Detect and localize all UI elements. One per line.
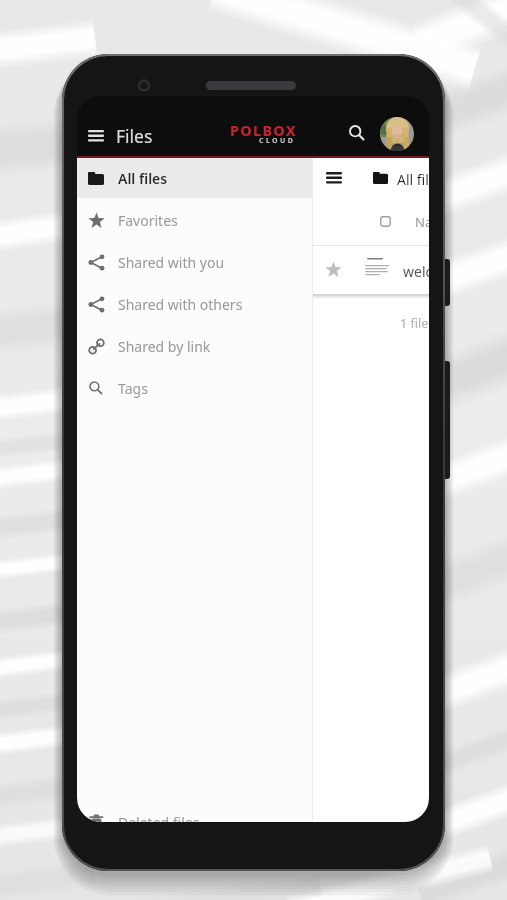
- staticText: Tags: [118, 379, 148, 398]
- staticText: Shared with you: [118, 253, 225, 272]
- staticText: welcome: [403, 262, 429, 281]
- staticText: Shared by link: [118, 337, 211, 356]
- staticText: CLOUD: [259, 136, 296, 146]
- staticText: All files: [397, 170, 429, 189]
- staticText: All files: [118, 169, 168, 188]
- staticText: Shared with others: [118, 295, 243, 314]
- staticText: Name: [415, 213, 429, 231]
- staticText: 1 file: [400, 315, 429, 332]
- staticText: Files: [116, 124, 153, 148]
- staticText: Favorites: [118, 211, 178, 230]
- staticText: POLBOX: [230, 120, 298, 140]
- staticText: Deleted files: [118, 813, 200, 822]
